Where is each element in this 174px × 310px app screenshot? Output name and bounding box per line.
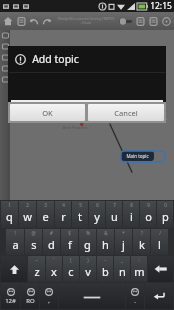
button[interactable]: Share: [149, 17, 158, 26]
staticText: Add topic: [32, 52, 79, 66]
button[interactable]: Voice input: [126, 283, 144, 309]
staticText: `: [53, 257, 55, 263]
staticText: ~: [35, 257, 38, 263]
staticText: 9: [147, 202, 150, 208]
button[interactable]: 9: [140, 201, 156, 228]
button[interactable]: 4: [55, 201, 71, 228]
button[interactable]: 6: [89, 201, 105, 228]
staticText: Best Practice: [62, 125, 88, 131]
staticText: o: [145, 209, 152, 224]
staticText: /Mindjet/Documents/Getting STARTED: [57, 17, 115, 21]
staticText: e: [42, 209, 49, 224]
staticText: &: [104, 230, 108, 236]
staticText: r: [61, 209, 66, 224]
button[interactable]: -: [97, 256, 113, 282]
staticText: f: [68, 237, 72, 252]
button[interactable]: Enter: [145, 283, 173, 309]
staticText: 6: [96, 202, 99, 208]
staticText: Cancel: [114, 108, 138, 118]
staticText: a: [12, 237, 19, 252]
staticText: !: [14, 230, 16, 236]
button[interactable]: OK: [10, 104, 85, 121]
staticText: u: [111, 209, 118, 224]
button[interactable]: Redo: [42, 17, 51, 26]
staticText: p: [162, 209, 169, 224]
button[interactable]: ): [80, 256, 96, 282]
button[interactable]: Cancel: [88, 104, 164, 121]
button[interactable]: Rail tool 1: [2, 32, 9, 39]
staticText: t: [78, 209, 82, 224]
button[interactable]: Layout: [136, 17, 145, 26]
staticText: m: [134, 264, 145, 279]
button[interactable]: 7: [106, 201, 122, 228]
staticText: :: [138, 257, 140, 263]
button[interactable]: Space: [59, 283, 125, 309]
staticText: @: [31, 230, 36, 236]
button[interactable]: 2: [19, 201, 36, 228]
button[interactable]: %: [79, 229, 96, 255]
staticText: *: [122, 230, 125, 236]
button[interactable]: &: [97, 229, 114, 255]
button[interactable]: Home: [3, 16, 13, 26]
button[interactable]: Main topic: [121, 151, 154, 161]
staticText: 12:15: [150, 0, 172, 12]
staticText: 0: [164, 202, 167, 208]
staticText: -: [104, 257, 106, 263]
button[interactable]: Symbols: [1, 283, 20, 309]
button[interactable]: 1: [1, 201, 18, 228]
staticText: s: [31, 237, 37, 252]
staticText: - Cloud: [80, 21, 91, 25]
staticText: 2: [26, 202, 29, 208]
button[interactable]: `: [46, 256, 62, 282]
button[interactable]: @: [25, 229, 42, 255]
button[interactable]: :: [131, 256, 147, 282]
button[interactable]: Undo: [30, 17, 39, 26]
button[interactable]: !: [6, 229, 24, 255]
staticText: 5: [79, 202, 82, 208]
staticText: Presentation: [126, 118, 150, 123]
button[interactable]: *: [115, 229, 132, 255]
button[interactable]: 0: [157, 201, 173, 228]
staticText: %: [86, 230, 90, 236]
staticText: b: [102, 264, 109, 279]
button[interactable]: Settings: [40, 283, 58, 309]
button[interactable]: (: [63, 256, 79, 282]
staticText: j: [122, 237, 125, 252]
staticText: ): [87, 257, 89, 263]
staticText: z: [34, 264, 40, 279]
button[interactable]: Rail tool 5: [2, 76, 9, 83]
button[interactable]: Rail tool 4: [2, 65, 9, 72]
staticText: ,: [48, 297, 50, 305]
button[interactable]: 3: [37, 201, 54, 228]
button[interactable]: 5: [72, 201, 88, 228]
staticText: 7: [113, 202, 116, 208]
button[interactable]: ?: [133, 229, 150, 255]
staticText: _: [121, 257, 123, 263]
button[interactable]: /: [151, 229, 168, 255]
button[interactable]: New document: [17, 17, 26, 26]
staticText: k: [139, 237, 145, 252]
staticText: i: [130, 209, 133, 224]
staticText: q: [6, 209, 13, 224]
button[interactable]: More options: [162, 17, 171, 26]
staticText: l: [158, 237, 161, 252]
button[interactable]: #: [43, 229, 60, 255]
button[interactable]: Rail tool 2: [2, 43, 9, 50]
button[interactable]: Backspace: [148, 256, 173, 282]
staticText: 4: [62, 202, 65, 208]
staticText: 3: [44, 202, 47, 208]
button[interactable]: _: [114, 256, 130, 282]
staticText: d: [48, 237, 55, 252]
button[interactable]: $: [61, 229, 78, 255]
staticText: v: [85, 264, 91, 279]
button[interactable]: Language: [21, 283, 39, 309]
button[interactable]: 8: [123, 201, 139, 228]
button[interactable]: ~: [28, 256, 45, 282]
staticText: 1: [8, 202, 11, 208]
staticText: c: [68, 264, 74, 279]
staticText: OK: [42, 108, 53, 118]
staticText: (: [70, 257, 72, 263]
button[interactable]: Rail tool 3: [2, 54, 9, 61]
button[interactable]: Shift: [1, 256, 27, 282]
